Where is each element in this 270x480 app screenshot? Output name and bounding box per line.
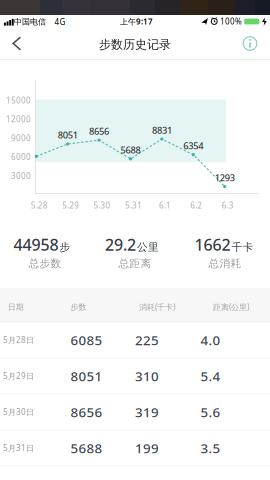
staticText: 3000 [11,171,31,181]
staticText: 199 [135,439,159,457]
staticText: 8656 [70,403,102,421]
staticText: 8051 [70,367,102,385]
staticText: 5月30日 [3,407,34,417]
staticText: 5.29 [62,200,79,211]
staticText: 15000 [6,95,31,106]
staticText: 步数 [70,302,86,312]
button[interactable]: 返回 [0,34,36,54]
staticText: 日期 [8,302,24,312]
staticText: 公里 [137,240,159,254]
staticText: 8051 [58,129,78,141]
staticText: 5月31日 [3,443,34,453]
staticText: 1662 [194,234,230,255]
staticText: 310 [135,367,159,385]
staticText: 消耗(千卡) [139,302,175,312]
staticText: 5.30 [94,200,111,211]
staticText: 5.31 [125,200,142,211]
staticText: 29.2 [105,234,136,255]
staticText: 6085 [70,331,102,349]
staticText: 5.28 [31,200,48,211]
staticText: 上午9:17 [120,16,153,27]
staticText: 总步数 [28,257,61,270]
staticText: 6354 [183,139,203,152]
staticText: 1293 [215,171,235,184]
staticText: 距离(公里) [213,302,249,312]
staticText: 6.3 [222,200,234,211]
staticText: 9000 [11,133,31,143]
staticText: 319 [135,403,159,421]
staticText: 5.4 [200,367,220,385]
staticText: 5.6 [200,403,220,421]
staticText: 6000 [11,152,31,162]
staticText: 225 [135,331,159,349]
staticText: 3.5 [200,439,220,457]
staticText: 6.2 [190,200,202,211]
staticText: 6.1 [159,200,171,211]
staticText: 4G [54,16,65,27]
staticText: 12000 [6,114,31,124]
staticText: 5月29日 [3,371,34,381]
staticText: 100% [220,16,242,27]
staticText: 8831 [152,124,172,136]
staticText: 8656 [89,125,109,137]
staticText: 总消耗 [208,257,241,270]
staticText: 5688 [70,439,102,457]
staticText: 总距离 [118,257,151,270]
staticText: 44958 [13,234,58,255]
staticText: 千卡 [231,240,253,254]
staticText: 4.0 [200,331,220,349]
staticText: 5688 [120,144,140,156]
staticText: 步 [59,240,70,254]
staticText: 步数历史记录 [99,37,171,52]
staticText: 中国电信 [14,17,46,27]
staticText: 5月28日 [3,335,34,345]
button[interactable]: 信息 [239,32,261,54]
